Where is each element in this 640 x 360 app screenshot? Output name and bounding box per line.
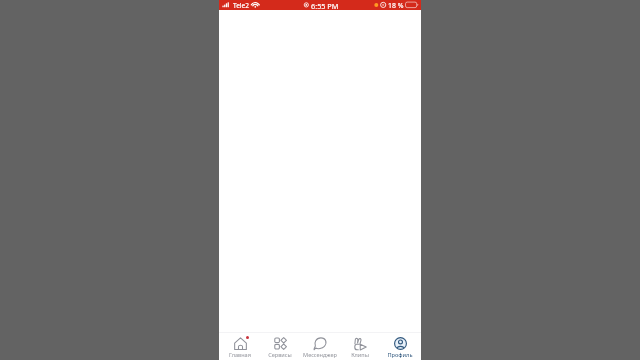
staticText: 6:55 PM bbox=[311, 1, 339, 11]
staticText: Главная bbox=[229, 351, 251, 359]
button[interactable]: Профиль bbox=[381, 333, 419, 360]
staticText: Сервисы bbox=[268, 351, 292, 359]
staticText: Клипы bbox=[351, 351, 369, 359]
staticText: Профиль bbox=[387, 351, 413, 359]
button[interactable]: Мессенджер bbox=[301, 333, 339, 360]
button[interactable]: Сервисы bbox=[261, 333, 299, 360]
staticText: 18 % bbox=[388, 1, 404, 10]
button[interactable]: Клипы bbox=[341, 333, 379, 360]
staticText: Tele2 bbox=[233, 1, 249, 10]
button[interactable]: Главная bbox=[221, 333, 259, 360]
staticText: Мессенджер bbox=[303, 351, 337, 359]
